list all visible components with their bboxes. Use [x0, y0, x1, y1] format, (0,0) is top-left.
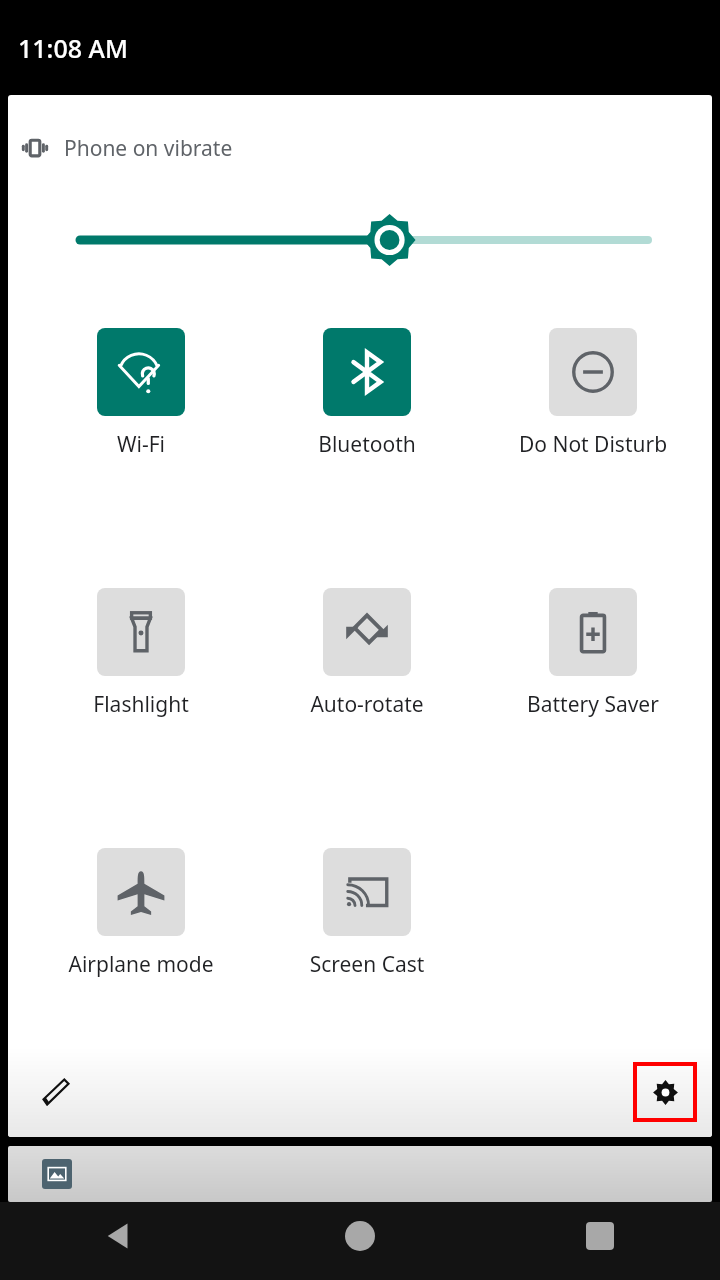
staticText: Bluetooth: [287, 430, 447, 459]
button[interactable]: Home: [240, 1202, 480, 1280]
button[interactable]: [8, 1146, 712, 1202]
button[interactable]: Bluetooth: [287, 328, 447, 459]
staticText: Wi-Fi: [61, 430, 221, 459]
staticText: Auto-rotate: [287, 690, 447, 719]
button[interactable]: Edit: [28, 1064, 84, 1120]
button[interactable]: Settings: [635, 1064, 695, 1120]
staticText: Flashlight: [61, 690, 221, 719]
button[interactable]: Auto-rotate: [287, 588, 447, 719]
button[interactable]: Wi-Fi: [61, 328, 221, 459]
button[interactable]: Phone on vibrate: [8, 123, 712, 173]
staticText: Screen Cast: [287, 950, 447, 979]
button[interactable]: Recents: [480, 1202, 720, 1280]
button[interactable]: Back: [0, 1202, 240, 1280]
staticText: Airplane mode: [61, 950, 221, 979]
staticText: Phone on vibrate: [64, 134, 233, 163]
button[interactable]: Airplane mode: [61, 848, 221, 979]
staticText: 11:08 AM: [18, 31, 128, 65]
button[interactable]: Brightness: [8, 205, 712, 275]
button[interactable]: Screen Cast: [287, 848, 447, 979]
staticText: Do Not Disturb: [513, 430, 673, 459]
button[interactable]: Do Not Disturb: [513, 328, 673, 459]
button[interactable]: Battery Saver: [513, 588, 673, 719]
button[interactable]: Flashlight: [61, 588, 221, 719]
staticText: Battery Saver: [513, 690, 673, 719]
